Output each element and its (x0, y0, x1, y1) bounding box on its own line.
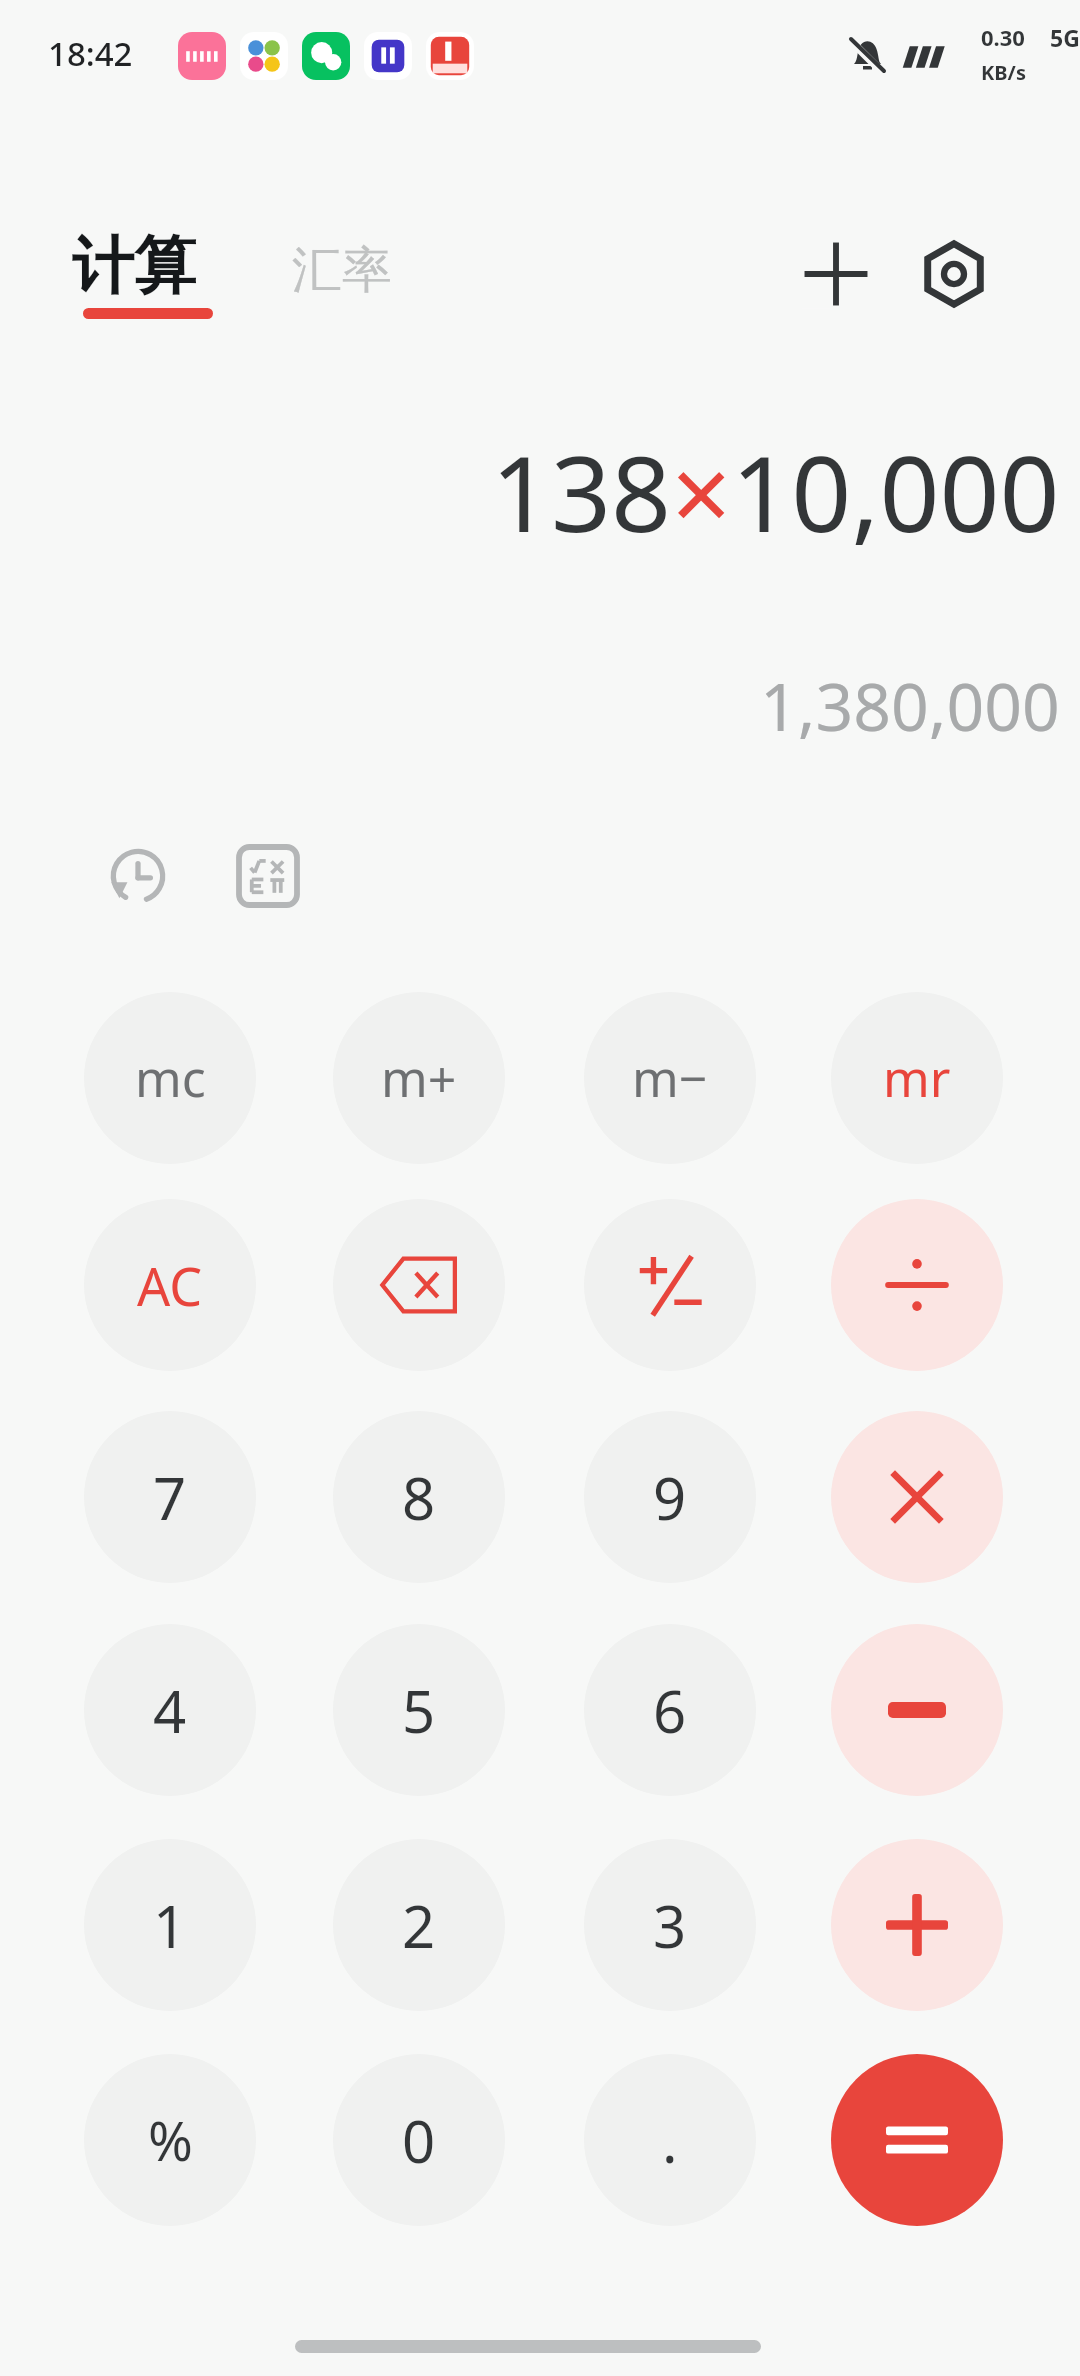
button[interactable]: 7 (84, 1411, 256, 1583)
staticText: 计算 (72, 227, 196, 305)
button[interactable]: History (88, 826, 188, 926)
button[interactable]: 0 (333, 2054, 505, 2226)
button[interactable]: Multiply (831, 1411, 1003, 1583)
button[interactable]: . (584, 2054, 756, 2226)
button[interactable]: 9 (584, 1411, 756, 1583)
staticText: 0 (402, 2101, 436, 2180)
button[interactable]: 计算 (72, 218, 252, 314)
staticText: 5G (1050, 22, 1080, 53)
button[interactable]: m+ (333, 992, 505, 1164)
staticText: 0.30 (981, 22, 1025, 52)
button[interactable]: % (84, 2054, 256, 2226)
staticText: 9 (653, 1458, 687, 1537)
button[interactable]: Backspace (333, 1199, 505, 1371)
button[interactable]: Minus (831, 1624, 1003, 1796)
staticText: AC (137, 1250, 203, 1321)
button[interactable]: Equals (831, 2054, 1003, 2226)
button[interactable]: mc (84, 992, 256, 1164)
staticText: 8 (402, 1458, 436, 1537)
button[interactable]: Settings (908, 228, 1000, 320)
button[interactable]: 6 (584, 1624, 756, 1796)
button[interactable]: 3 (584, 1839, 756, 2011)
button[interactable]: m− (584, 992, 756, 1164)
button[interactable]: 1 (84, 1839, 256, 2011)
button[interactable]: AC (84, 1199, 256, 1371)
staticText: m− (632, 1044, 708, 1112)
button[interactable]: 汇率 (292, 226, 462, 314)
button[interactable]: mr (831, 992, 1003, 1164)
staticText: 18:42 (48, 31, 133, 76)
button[interactable]: 4 (84, 1624, 256, 1796)
staticText: mr (883, 1044, 951, 1112)
staticText: 138×10,000 (491, 420, 1060, 560)
button[interactable]: 8 (333, 1411, 505, 1583)
staticText: KB/s (981, 59, 1026, 86)
staticText: 6 (653, 1671, 687, 1750)
other: Silent mode (842, 30, 892, 80)
staticText: 4 (153, 1671, 187, 1750)
button[interactable]: Plus minus (584, 1199, 756, 1371)
staticText: % (148, 2103, 193, 2177)
staticText: . (662, 2101, 678, 2180)
button[interactable]: Plus (831, 1839, 1003, 2011)
staticText: m+ (381, 1044, 457, 1112)
button[interactable]: 2 (333, 1839, 505, 2011)
button[interactable]: 5 (333, 1624, 505, 1796)
staticText: 7 (153, 1458, 187, 1537)
staticText: 2 (402, 1886, 436, 1965)
button[interactable]: Scientific mode (218, 826, 318, 926)
staticText: 1 (153, 1886, 187, 1965)
staticText: mc (135, 1044, 206, 1112)
staticText: 汇率 (292, 239, 392, 302)
staticText: 3 (653, 1886, 687, 1965)
staticText: 5 (402, 1671, 436, 1750)
button[interactable]: Divide (831, 1199, 1003, 1371)
button[interactable]: Split screen (790, 228, 882, 320)
staticText: 1,380,000 (760, 660, 1060, 750)
